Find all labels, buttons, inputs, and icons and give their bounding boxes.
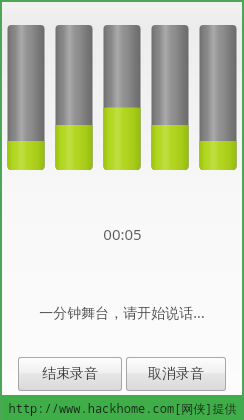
staticText: 00:05: [103, 224, 142, 244]
staticText: 结束录音: [42, 365, 98, 383]
button[interactable]: 取消录音: [127, 358, 225, 390]
staticText: 取消录音: [148, 365, 204, 383]
button[interactable]: 结束录音: [19, 358, 121, 390]
staticText: 一分钟舞台，请开始说话...: [39, 303, 205, 322]
staticText: http://www.hackhome.com[网侠]提供: [8, 400, 237, 416]
